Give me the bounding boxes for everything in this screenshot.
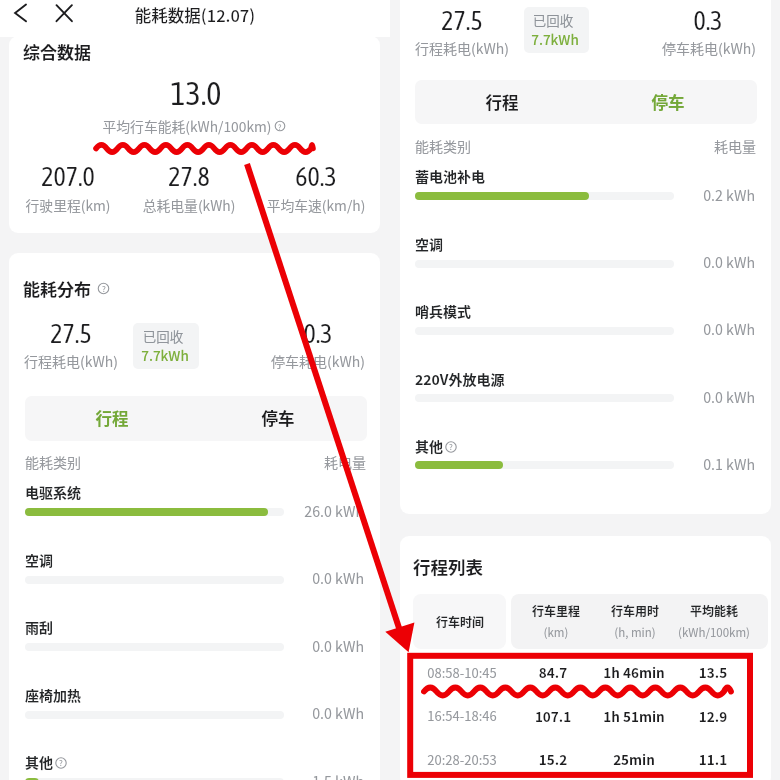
staticText: 空调 [415, 234, 780, 254]
button[interactable] [415, 80, 586, 124]
staticText: 空调 [25, 550, 425, 570]
staticText: 11.1 [653, 749, 773, 769]
staticText: 座椅加热 [25, 685, 425, 705]
button[interactable] [413, 594, 506, 649]
staticText: 其他 [415, 436, 780, 456]
staticText: 平均行车能耗(kWh/100km) [57, 116, 317, 136]
staticText: 60.3 [246, 162, 386, 192]
staticText: 7.7kWh [120, 345, 210, 365]
staticText: 停车耗电(kWh) [238, 351, 398, 371]
staticText: 16:54-18:46 [392, 706, 532, 725]
staticText: 08:58-10:45 [392, 663, 532, 682]
staticText: 行驶里程(km) [0, 195, 148, 215]
staticText: 能耗类别 [415, 136, 780, 156]
staticText: 27.8 [119, 162, 259, 192]
staticText: 停车 [608, 90, 728, 114]
button[interactable]: Close [54, 2, 76, 24]
staticText: (kWh/100km) [644, 624, 780, 641]
staticText: 0.3 [638, 6, 778, 36]
staticText: 20:28-20:53 [392, 750, 532, 769]
button[interactable]: Back [10, 2, 32, 24]
button[interactable] [411, 738, 750, 780]
button[interactable] [25, 396, 196, 441]
staticText: 能耗分布 [23, 276, 423, 301]
staticText: ? [59, 757, 63, 769]
staticText: 107.1 [493, 706, 613, 726]
staticText: 已回收 [513, 10, 593, 30]
staticText: 0.0 kWh [244, 636, 364, 657]
staticText: 行车里程 [496, 602, 616, 619]
staticText: 220V外放电源 [415, 369, 780, 389]
staticText: 13.5 [653, 662, 773, 682]
staticText: 总耗电量(kWh) [109, 195, 269, 215]
staticText: 1h 46min [564, 662, 704, 682]
staticText: 25min [564, 749, 704, 769]
staticText: 能耗数据(12.07) [45, 3, 345, 27]
staticText: 电驱系统 [25, 482, 425, 502]
staticText: 行车用时 [575, 602, 695, 619]
staticText: ? [278, 121, 282, 132]
staticText: 平均车速(km/h) [236, 195, 396, 215]
staticText: 0.0 kWh [244, 703, 364, 724]
staticText: 0.0 kWh [635, 252, 755, 273]
staticText: 7.7kWh [510, 29, 600, 49]
staticText: ? [449, 441, 453, 453]
staticText: 停车耗电(kWh) [629, 38, 780, 58]
staticText: 0.0 kWh [635, 387, 755, 408]
staticText: 1.5 kWh [244, 771, 364, 780]
staticText: 0.0 kWh [635, 319, 755, 340]
staticText: 哨兵模式 [415, 301, 780, 321]
staticText: 行车时间 [400, 613, 520, 630]
staticText: 0.0 kWh [244, 568, 364, 589]
button[interactable] [196, 396, 367, 441]
button[interactable] [411, 651, 750, 694]
staticText: (h, min) [575, 624, 695, 641]
staticText: 行程列表 [413, 554, 780, 579]
staticText: (km) [496, 624, 616, 641]
staticText: 停车 [218, 406, 338, 430]
staticText: 207.0 [0, 162, 138, 192]
staticText: 综合数据 [23, 39, 423, 64]
button[interactable]: Help [53, 755, 69, 771]
staticText: 已回收 [123, 326, 203, 346]
staticText: 行程耗电(kWh) [0, 351, 151, 371]
staticText: 其他 [25, 752, 425, 772]
staticText: 0.3 [248, 319, 388, 349]
staticText: 平均能耗 [644, 602, 780, 619]
button[interactable] [586, 80, 757, 124]
button[interactable] [411, 694, 750, 737]
staticText: 耗电量 [636, 136, 756, 156]
staticText: 行程 [52, 406, 172, 430]
button[interactable]: Help [272, 118, 288, 134]
staticText: 26.0 kWh [244, 501, 364, 522]
staticText: ? [102, 283, 106, 295]
staticText: 能耗类别 [25, 452, 425, 472]
staticText: 行程耗电(kWh) [382, 38, 542, 58]
staticText: 84.7 [493, 662, 613, 682]
staticText: 耗电量 [246, 452, 366, 472]
staticText: 27.5 [392, 6, 532, 36]
staticText: 27.5 [1, 319, 141, 349]
staticText: 0.1 kWh [635, 454, 755, 475]
staticText: 15.2 [493, 749, 613, 769]
staticText: 行程 [442, 90, 562, 114]
button[interactable]: Help [95, 280, 112, 297]
button[interactable]: Help [443, 439, 459, 455]
staticText: 12.9 [653, 706, 773, 726]
staticText: 13.0 [96, 75, 296, 112]
staticText: 雨刮 [25, 617, 425, 637]
staticText: 0.2 kWh [635, 185, 755, 206]
staticText: 1h 51min [564, 706, 704, 726]
staticText: 蓄电池补电 [415, 166, 780, 186]
